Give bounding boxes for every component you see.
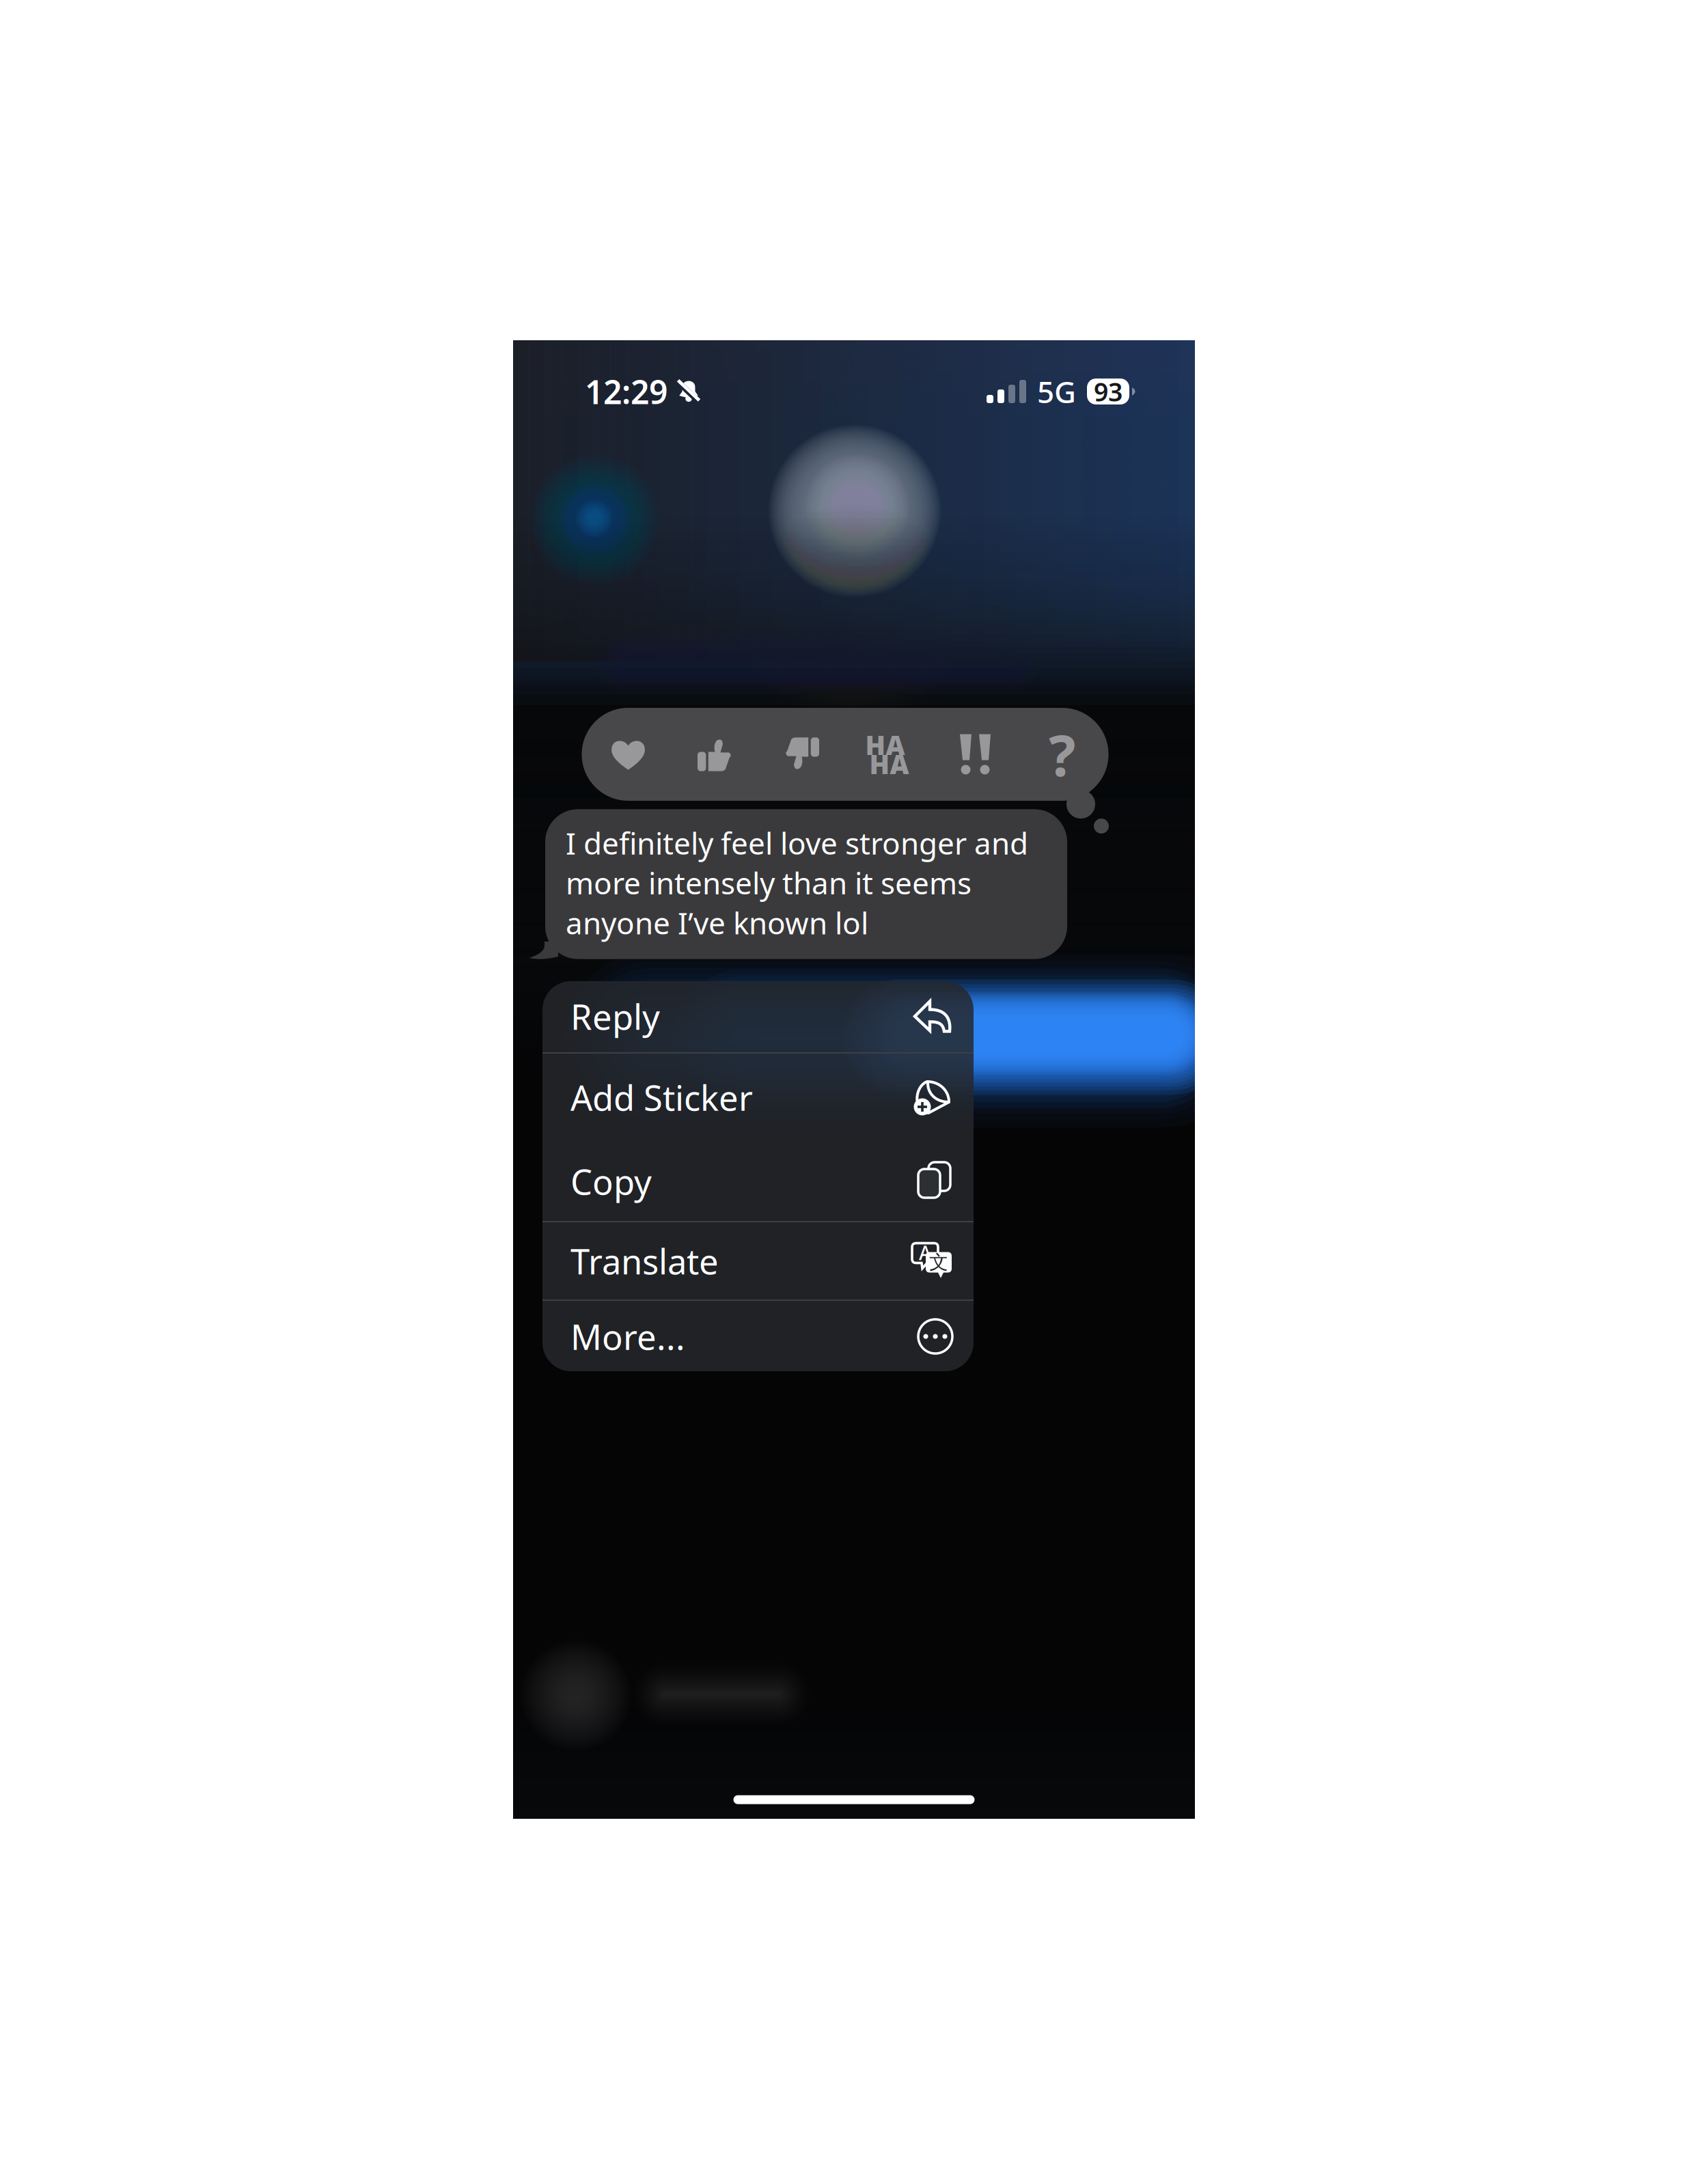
button[interactable]: Love xyxy=(585,710,672,799)
button[interactable]: Exclamation xyxy=(932,710,1019,799)
staticText: HA xyxy=(869,746,909,781)
staticText: Reply xyxy=(570,993,660,1039)
button[interactable]: Translate xyxy=(542,1222,974,1300)
button[interactable]: Haha xyxy=(845,710,932,799)
staticText: 93 xyxy=(1094,375,1122,408)
button[interactable]: Copy xyxy=(542,1142,974,1221)
staticText: Copy xyxy=(570,1158,652,1204)
staticText: Translate xyxy=(570,1238,719,1284)
staticText: More... xyxy=(570,1313,685,1359)
button[interactable]: Thumbs up xyxy=(672,710,758,799)
staticText: A xyxy=(919,1240,931,1265)
staticText: I definitely feel love stronger and more… xyxy=(566,823,1028,943)
staticText: 5G xyxy=(1037,372,1076,411)
staticText: 文 xyxy=(929,1251,948,1274)
button[interactable]: Thumbs down xyxy=(758,710,845,799)
staticText: Add Sticker xyxy=(570,1074,753,1120)
staticText: HA xyxy=(865,727,905,762)
button[interactable]: More... xyxy=(542,1301,974,1372)
staticText: ? xyxy=(1049,717,1075,792)
staticText: 12:29 xyxy=(585,370,667,413)
button[interactable]: Reply xyxy=(542,980,974,1052)
button[interactable]: Add Sticker xyxy=(542,1054,974,1141)
button[interactable]: Question mark xyxy=(1019,710,1105,799)
